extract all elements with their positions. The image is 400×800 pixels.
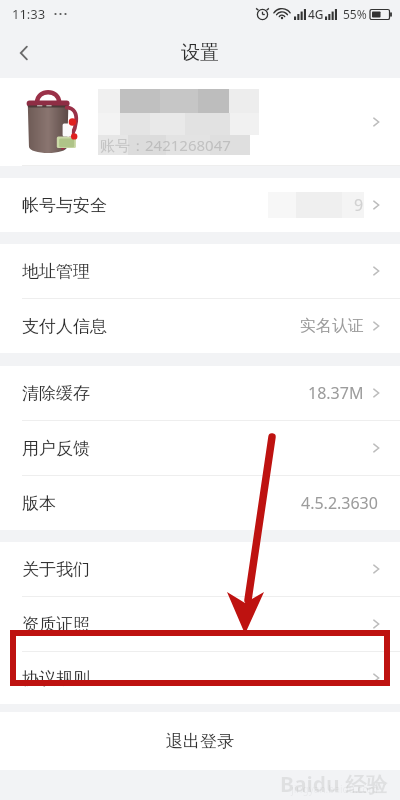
button[interactable]: 资质证照 <box>0 597 400 651</box>
staticText: jingyan.baidu.com <box>291 782 378 796</box>
staticText: 9 <box>354 194 364 216</box>
staticText: 帐号与安全 <box>22 195 107 216</box>
staticText: 关于我们 <box>22 559 90 580</box>
staticText: 协议规则 <box>22 668 90 689</box>
button[interactable]: Back <box>0 29 48 77</box>
button[interactable]: 帐号与安全 <box>0 178 400 232</box>
staticText: 资质证照 <box>22 614 90 635</box>
button[interactable]: 版本 <box>0 476 400 530</box>
staticText: 实名认证 <box>300 316 364 336</box>
staticText: 清除缓存 <box>22 383 90 404</box>
staticText: 4.5.2.3630 <box>301 492 378 514</box>
button[interactable]: 关于我们 <box>0 542 400 596</box>
button[interactable]: 支付人信息 <box>0 299 400 353</box>
staticText: 版本 <box>22 493 56 514</box>
button[interactable]: 地址管理 <box>0 244 400 298</box>
staticText: 支付人信息 <box>22 316 107 337</box>
button[interactable]: 协议规则 <box>0 652 400 704</box>
staticText: 用户反馈 <box>22 438 90 459</box>
staticText: 设置 <box>181 41 219 65</box>
staticText: 11:33 <box>12 5 46 23</box>
button[interactable]: 清除缓存 <box>0 366 400 420</box>
button[interactable]: 退出登录 <box>0 712 400 770</box>
staticText: 55% <box>343 6 367 22</box>
staticText: 18.37M <box>308 382 364 404</box>
staticText: 退出登录 <box>166 731 234 752</box>
button[interactable]: 账号：2421268047 <box>0 78 400 166</box>
staticText: Baidu 经验 <box>280 770 388 796</box>
staticText: 地址管理 <box>22 261 90 282</box>
staticText: 4G <box>308 6 324 22</box>
staticText: 账号：2421268047 <box>100 135 231 155</box>
button[interactable]: 用户反馈 <box>0 421 400 475</box>
